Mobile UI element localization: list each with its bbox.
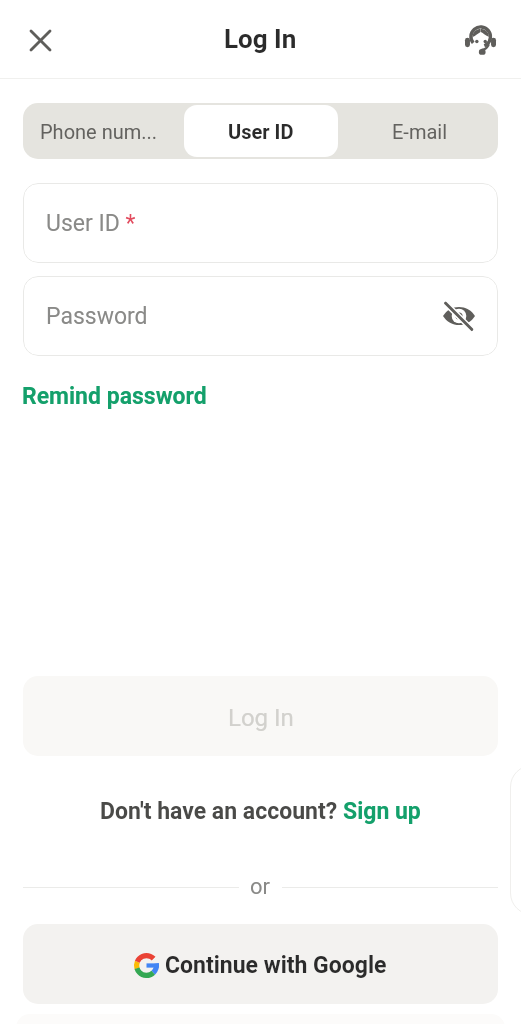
button[interactable]: Remind password [22, 383, 207, 410]
staticText: Log In [224, 24, 297, 54]
staticText: Don't have an account? [100, 798, 343, 825]
button[interactable]: User ID * [23, 183, 498, 263]
button[interactable]: Show password [439, 296, 479, 336]
button[interactable]: Password [23, 276, 498, 356]
button[interactable]: Log In [23, 676, 498, 756]
staticText: Log In [228, 704, 294, 732]
button[interactable]: Help [510, 765, 521, 915]
button[interactable]: User ID [184, 105, 338, 157]
button[interactable]: Phone num... [25, 105, 180, 157]
staticText: E-mail [392, 120, 448, 143]
button[interactable]: Sign up [343, 798, 421, 825]
staticText: User ID [228, 120, 294, 143]
staticText: Phone num... [40, 120, 158, 143]
staticText: User ID * [46, 210, 136, 237]
button[interactable]: Continue with Google [23, 924, 498, 1004]
button[interactable]: Customer support [458, 18, 502, 62]
staticText: Continue with Google [165, 952, 387, 979]
staticText: Password [46, 303, 148, 330]
staticText: or [250, 874, 271, 900]
button[interactable]: E-mail [342, 105, 496, 157]
button[interactable]: Close [20, 20, 60, 60]
